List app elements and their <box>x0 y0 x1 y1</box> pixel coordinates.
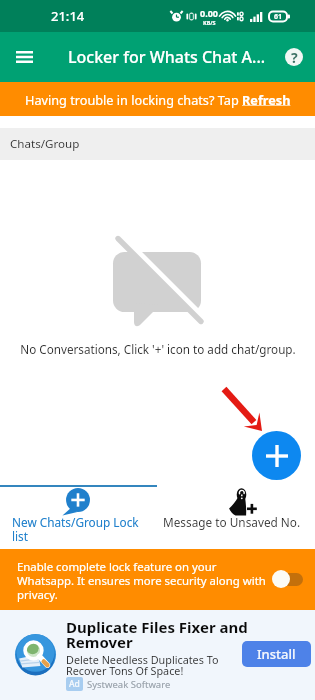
button[interactable]: Add chat or group <box>252 431 301 480</box>
staticText: Duplicate Files Fixer and Remover <box>66 617 251 653</box>
button[interactable]: New Chats/Group Lock list <box>0 483 157 549</box>
staticText: Chats/Group <box>10 136 80 152</box>
staticText: 21:14 <box>51 7 85 25</box>
button[interactable]: Enable complete lock feature on your Wha… <box>0 549 315 610</box>
staticText: 61 <box>274 12 283 22</box>
staticText: No Conversations, Click '+' icon to add … <box>20 341 296 357</box>
button[interactable]: Enable complete lock toggle <box>272 569 303 589</box>
button[interactable]: Duplicate Files Fixer and Remover <box>0 610 315 700</box>
staticText: Install <box>257 645 296 663</box>
button[interactable]: Open navigation menu <box>0 32 49 82</box>
staticText: Locker for Whats Chat A... <box>68 46 271 68</box>
staticText: Systweak Software <box>87 678 171 691</box>
button[interactable]: Install <box>242 641 311 667</box>
staticText: Enable complete lock feature on your Wha… <box>17 559 275 602</box>
button[interactable]: Having trouble in locking chats? Tap Ref… <box>0 82 315 116</box>
staticText: Message to Unsaved No. <box>163 514 301 530</box>
staticText: Having trouble in locking chats? Tap Ref… <box>25 91 291 108</box>
staticText: Delete Needless Duplicates To Recover To… <box>66 652 246 678</box>
button[interactable]: Help <box>271 32 315 82</box>
staticText: ? <box>291 48 298 66</box>
button[interactable]: Chats/Group <box>0 128 315 160</box>
staticText: 0.00 <box>200 7 218 19</box>
staticText: Ad <box>69 678 80 690</box>
button[interactable]: Message to Unsaved No. <box>157 483 315 549</box>
staticText: New Chats/Group Lock list <box>12 514 146 545</box>
staticText: KB/S <box>203 19 216 26</box>
